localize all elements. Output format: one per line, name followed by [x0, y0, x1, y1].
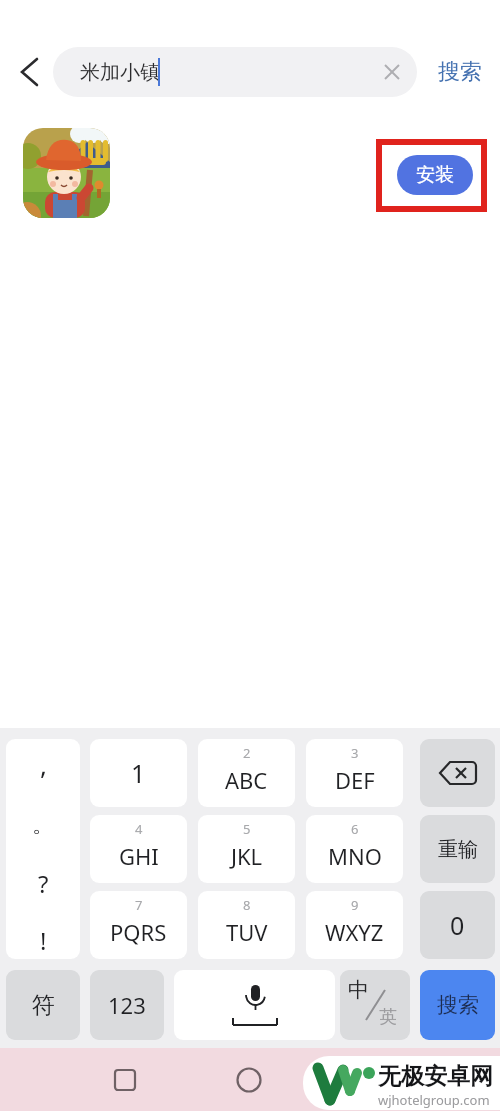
staticText: 英 [379, 1006, 397, 1029]
button[interactable] [232, 1063, 266, 1097]
staticText: 搜索 [437, 992, 479, 1018]
button[interactable]: 无极安卓网 [303, 1056, 500, 1110]
button[interactable] [23, 128, 110, 218]
staticText: 搜索 [438, 58, 482, 86]
button[interactable]: 123 [90, 970, 164, 1040]
staticText: 3 [351, 744, 359, 762]
staticText: 中 [348, 977, 369, 1003]
button[interactable]: 1 [90, 739, 187, 807]
staticText: MNO [328, 841, 382, 871]
staticText: ! [40, 924, 47, 957]
staticText: 。 [32, 811, 54, 839]
staticText: GHI [119, 841, 159, 871]
staticText: 2 [243, 744, 251, 762]
button[interactable]: 3 [306, 739, 403, 807]
button[interactable]: 5 [198, 815, 295, 883]
button[interactable]: 搜索 [425, 47, 495, 97]
staticText: DEF [335, 765, 375, 795]
button[interactable]: 符 [6, 970, 80, 1040]
staticText: 7 [135, 896, 143, 914]
staticText: 重输 [438, 837, 478, 862]
staticText: 8 [243, 896, 251, 914]
button[interactable]: 8 [198, 891, 295, 959]
staticText: 9 [351, 896, 359, 914]
staticText: 1 [131, 756, 146, 790]
staticText: 6 [351, 820, 359, 838]
staticText: 米加小镇 [80, 60, 160, 85]
button[interactable]: 7 [90, 891, 187, 959]
button[interactable]: 中 [340, 970, 410, 1040]
staticText: WXYZ [325, 917, 384, 947]
button[interactable] [108, 1063, 142, 1097]
button[interactable]: 9 [306, 891, 403, 959]
staticText: ABC [225, 765, 268, 795]
button[interactable]: 2 [198, 739, 295, 807]
staticText: 123 [108, 990, 146, 1020]
staticText: ? [38, 867, 49, 900]
staticText: 符 [32, 991, 55, 1020]
staticText: 5 [243, 820, 251, 838]
button[interactable]: 安装 [397, 155, 473, 195]
button[interactable]: 重输 [420, 815, 495, 883]
staticText: JKL [231, 841, 263, 871]
button[interactable] [420, 739, 495, 807]
button[interactable]: 4 [90, 815, 187, 883]
staticText: PQRS [110, 917, 167, 947]
staticText: 无极安卓网 [378, 1062, 493, 1091]
staticText: wjhotelgroup.com [378, 1091, 490, 1109]
button[interactable]: 6 [306, 815, 403, 883]
staticText: 0 [450, 908, 465, 942]
button[interactable]: , [6, 739, 80, 959]
button[interactable]: 0 [420, 891, 495, 959]
staticText: TUV [226, 917, 268, 947]
button[interactable] [174, 970, 335, 1040]
staticText: 4 [135, 820, 143, 838]
staticText: 安装 [416, 163, 454, 187]
button[interactable]: 米加小镇 [53, 47, 417, 97]
button[interactable] [10, 52, 48, 92]
staticText: , [40, 747, 47, 782]
button[interactable]: 搜索 [420, 970, 495, 1040]
